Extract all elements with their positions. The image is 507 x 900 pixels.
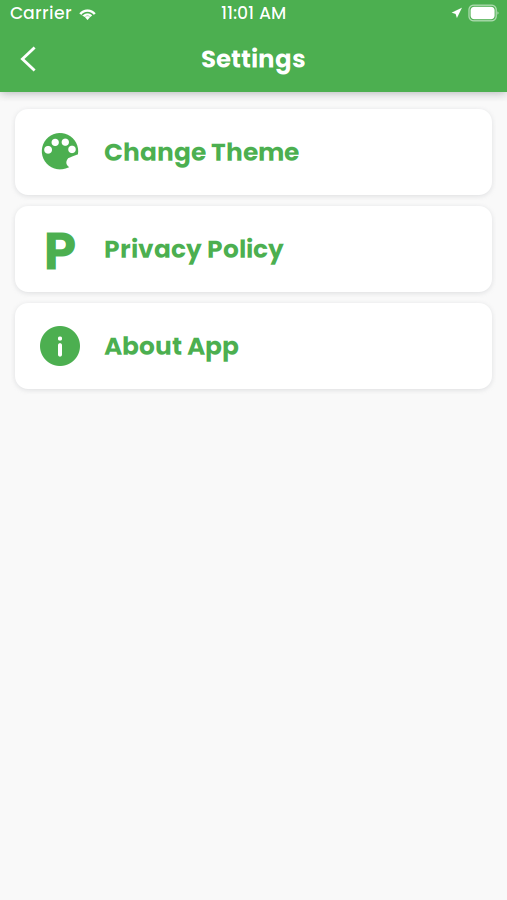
- staticText: About App: [104, 328, 239, 363]
- staticText: Change Theme: [104, 134, 299, 169]
- staticText: 11:01 AM: [221, 1, 286, 25]
- staticText: Carrier: [10, 1, 72, 25]
- button[interactable]: P: [15, 206, 492, 292]
- staticText: Settings: [201, 42, 306, 76]
- button[interactable]: Back: [6, 36, 51, 81]
- staticText: P: [43, 214, 76, 288]
- staticText: Privacy Policy: [104, 231, 284, 266]
- button[interactable]: Change Theme: [15, 109, 492, 195]
- button[interactable]: About App: [15, 303, 492, 389]
